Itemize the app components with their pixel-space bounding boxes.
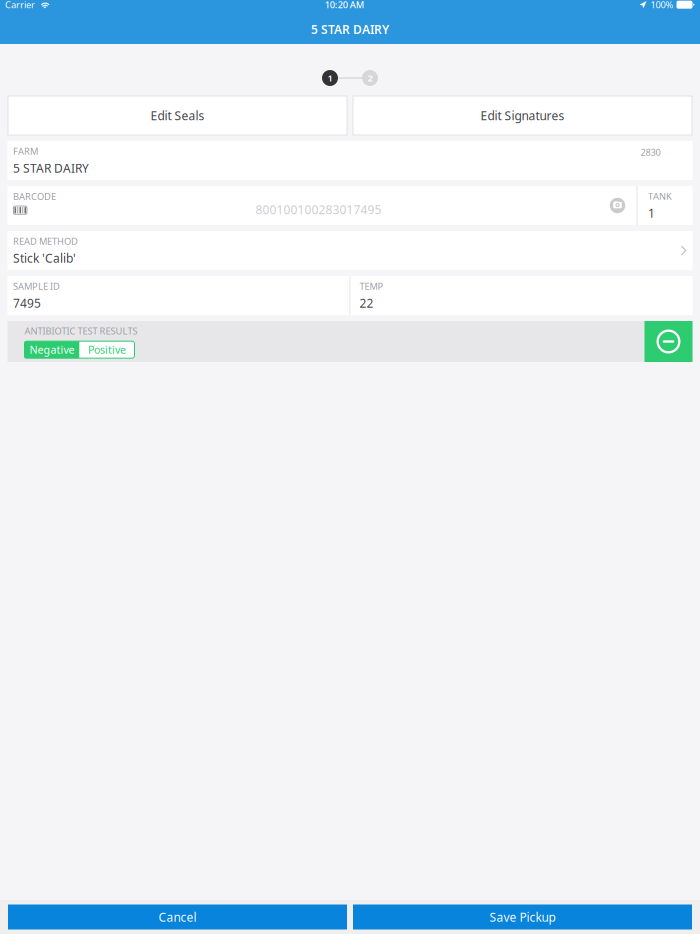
staticText: Positive bbox=[88, 343, 126, 357]
staticText: READ METHOD bbox=[13, 235, 78, 247]
button[interactable]: Remove sample bbox=[644, 321, 692, 362]
staticText: Negative bbox=[29, 343, 74, 357]
staticText: 10:20 AM bbox=[325, 0, 365, 11]
button[interactable]: Save Pickup bbox=[353, 904, 692, 929]
staticText: ANTIBIOTIC TEST RESULTS bbox=[24, 325, 137, 337]
staticText: 2 bbox=[367, 72, 372, 84]
staticText: 800100100283017495 bbox=[255, 201, 381, 217]
button[interactable]: Edit Signatures bbox=[353, 96, 692, 135]
button[interactable]: READ METHOD bbox=[7, 231, 692, 270]
staticText: Save Pickup bbox=[489, 909, 555, 925]
staticText: Carrier bbox=[5, 0, 35, 11]
staticText: Edit Seals bbox=[150, 107, 204, 123]
staticText: Edit Signatures bbox=[480, 107, 564, 123]
staticText: 7495 bbox=[13, 295, 41, 311]
staticText: 100% bbox=[650, 0, 673, 11]
button[interactable]: Negative bbox=[24, 341, 79, 358]
staticText: 5 STAR DAIRY bbox=[13, 160, 89, 176]
button[interactable]: Edit Seals bbox=[8, 96, 347, 135]
staticText: 1 bbox=[648, 205, 655, 221]
staticText: 5 STAR DAIRY bbox=[311, 21, 389, 37]
staticText: TANK bbox=[648, 190, 672, 202]
button[interactable]: Positive bbox=[79, 341, 134, 358]
button[interactable]: Cancel bbox=[8, 904, 347, 929]
staticText: BARCODE bbox=[13, 190, 56, 203]
staticText: FARM bbox=[13, 145, 38, 157]
staticText: 22 bbox=[359, 295, 373, 311]
button[interactable]: Scan barcode bbox=[600, 186, 634, 225]
staticText: TEMP bbox=[359, 280, 383, 292]
staticText: Stick 'Calib' bbox=[13, 250, 76, 266]
staticText: 1 bbox=[327, 72, 332, 84]
staticText: Cancel bbox=[158, 909, 196, 925]
staticText: SAMPLE ID bbox=[13, 280, 60, 292]
staticText: 2830 bbox=[640, 146, 660, 158]
